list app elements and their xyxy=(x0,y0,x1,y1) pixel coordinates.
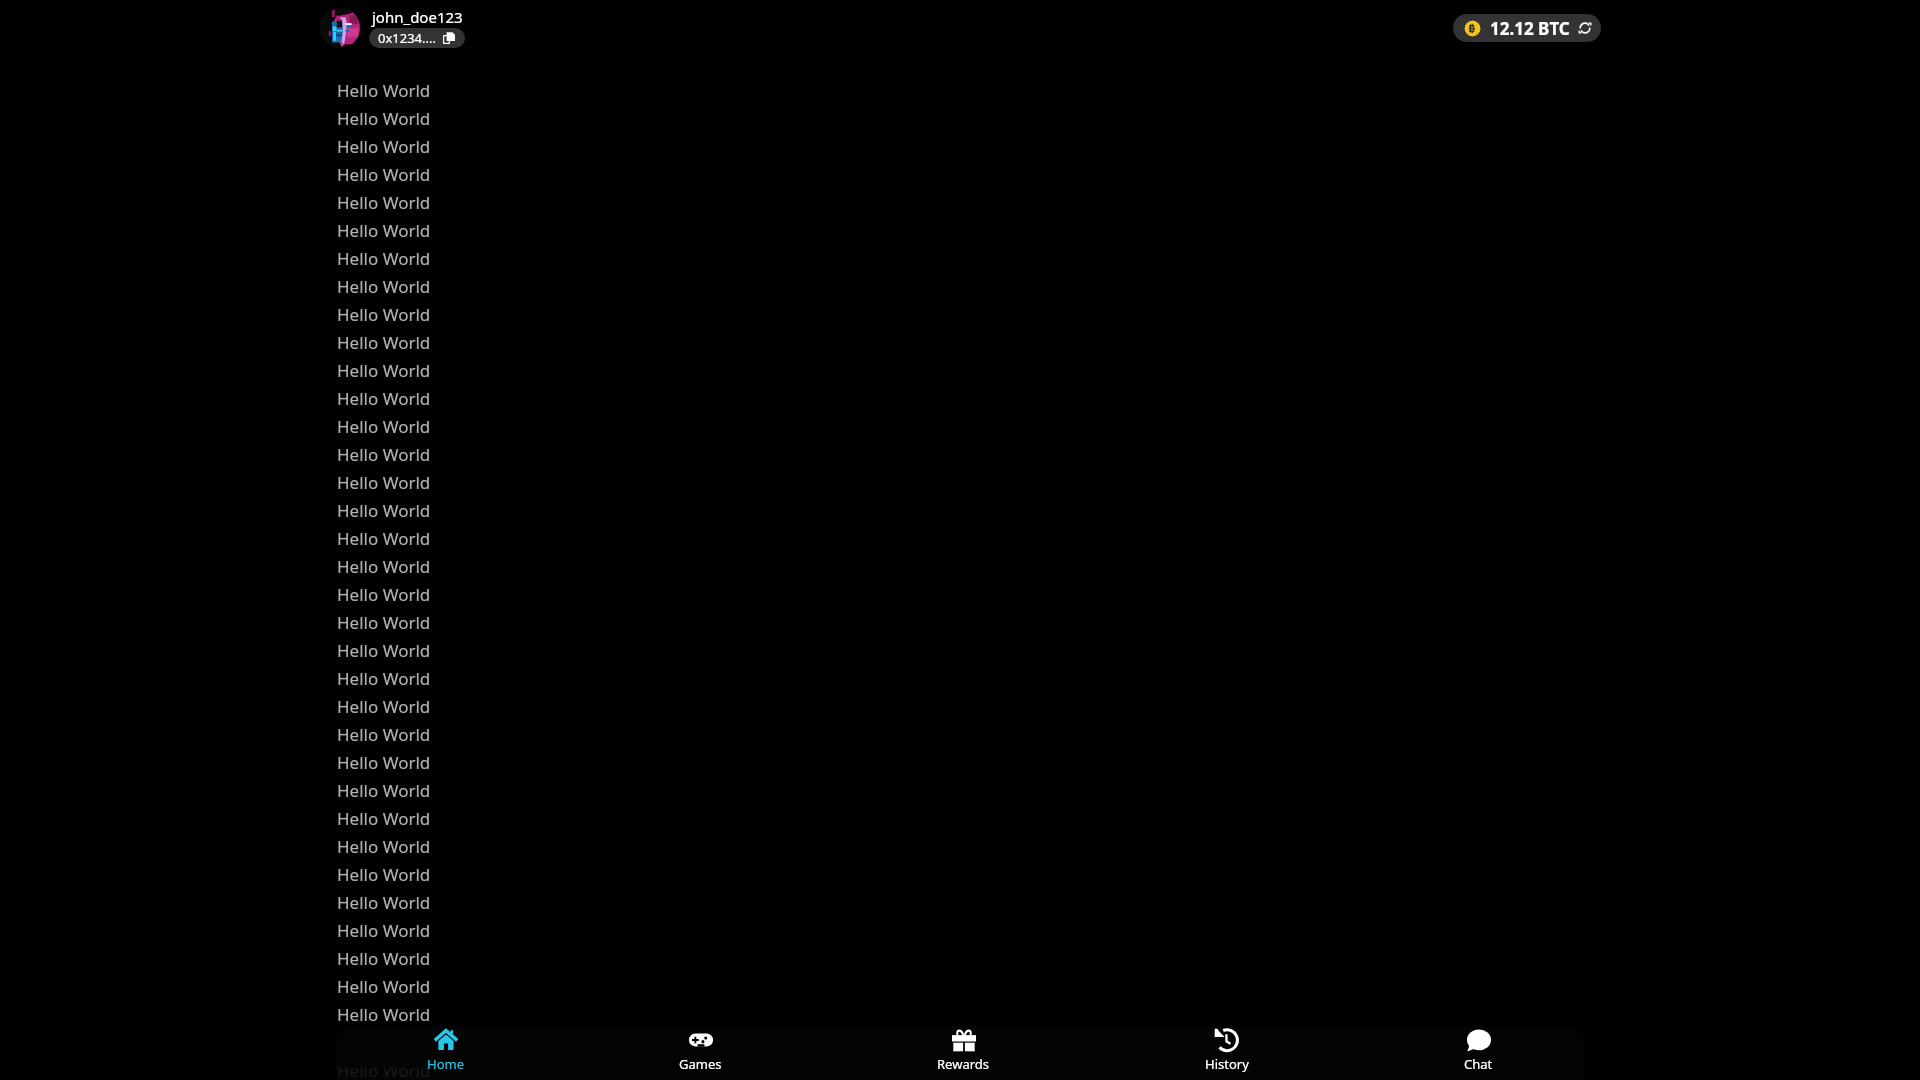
staticText: Hello World xyxy=(337,1059,431,1080)
staticText: Hello World xyxy=(337,891,431,914)
staticText: Hello World xyxy=(337,303,431,326)
staticText: Hello World xyxy=(337,499,431,522)
button[interactable]: 12.12 BTC xyxy=(1453,14,1601,42)
staticText: Chat xyxy=(1464,1055,1493,1073)
staticText: Hello World xyxy=(337,247,431,270)
staticText: Hello World xyxy=(337,723,431,746)
staticText: Hello World xyxy=(337,1003,431,1026)
staticText: Hello World xyxy=(337,779,431,802)
staticText: Hello World xyxy=(337,135,431,158)
staticText: Home xyxy=(427,1055,464,1073)
staticText: Hello World xyxy=(337,947,431,970)
staticText: Hello World xyxy=(337,107,431,130)
staticText: Hello World xyxy=(337,751,431,774)
staticText: Hello World xyxy=(337,639,431,662)
staticText: Hello World xyxy=(337,863,431,886)
staticText: Hello World xyxy=(337,695,431,718)
button[interactable]: Chat xyxy=(1464,1028,1493,1080)
button[interactable]: Home xyxy=(427,1028,464,1080)
staticText: Games xyxy=(679,1055,722,1073)
button[interactable]: Rewards xyxy=(937,1028,990,1080)
staticText: Hello World xyxy=(337,415,431,438)
staticText: Hello World xyxy=(337,387,431,410)
staticText: Hello World xyxy=(337,471,431,494)
staticText: History xyxy=(1205,1055,1249,1073)
staticText: Hello World xyxy=(337,555,431,578)
staticText: Hello World xyxy=(337,667,431,690)
staticText: Hello World xyxy=(337,919,431,942)
staticText: Hello World xyxy=(337,527,431,550)
staticText: Hello World xyxy=(337,835,431,858)
button[interactable]: Copy wallet address xyxy=(443,32,455,44)
button[interactable]: Refresh balance xyxy=(1577,20,1593,36)
staticText: Hello World xyxy=(337,163,431,186)
staticText: Hello World xyxy=(337,807,431,830)
staticText: Hello World xyxy=(337,443,431,466)
staticText: Hello World xyxy=(337,191,431,214)
staticText: Rewards xyxy=(937,1055,990,1073)
button[interactable]: Games xyxy=(679,1028,722,1080)
staticText: 0x1234.... xyxy=(378,29,436,47)
staticText: Hello World xyxy=(337,79,431,102)
staticText: 12.12 BTC xyxy=(1490,17,1570,40)
staticText: Hello World xyxy=(337,611,431,634)
staticText: Hello World xyxy=(337,975,431,998)
button[interactable]: Profile xyxy=(320,8,360,48)
button[interactable]: History xyxy=(1205,1028,1249,1080)
button[interactable]: 0x1234.... xyxy=(369,28,465,48)
staticText: Hello World xyxy=(337,219,431,242)
staticText: Hello World xyxy=(337,359,431,382)
staticText: Hello World xyxy=(337,331,431,354)
staticText: Hello World xyxy=(337,275,431,298)
staticText: Hello World xyxy=(337,583,431,606)
staticText: john_doe123 xyxy=(372,7,463,27)
button[interactable]: john_doe123 xyxy=(372,7,463,27)
